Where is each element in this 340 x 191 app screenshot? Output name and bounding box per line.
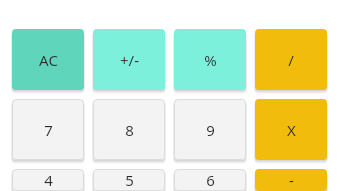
staticText: % <box>204 50 217 70</box>
staticText: AC <box>39 50 58 70</box>
button[interactable]: AC <box>12 29 84 90</box>
staticText: 9 <box>206 120 215 140</box>
staticText: / <box>288 50 294 70</box>
button[interactable]: 7 <box>12 99 84 160</box>
staticText: 7 <box>44 120 53 140</box>
button[interactable]: - <box>255 169 327 191</box>
staticText: 8 <box>125 120 134 140</box>
staticText: 6 <box>206 170 215 190</box>
staticText: 5 <box>125 170 134 190</box>
button[interactable]: +/- <box>93 29 165 90</box>
button[interactable]: / <box>255 29 327 90</box>
staticText: X <box>287 120 296 140</box>
button[interactable]: 6 <box>174 169 246 191</box>
button[interactable]: 9 <box>174 99 246 160</box>
staticText: 4 <box>44 170 53 190</box>
staticText: - <box>289 170 294 190</box>
button[interactable]: 4 <box>12 169 84 191</box>
button[interactable]: 5 <box>93 169 165 191</box>
button[interactable]: X <box>255 99 327 160</box>
staticText: +/- <box>120 50 139 70</box>
button[interactable]: % <box>174 29 246 90</box>
button[interactable]: 8 <box>93 99 165 160</box>
